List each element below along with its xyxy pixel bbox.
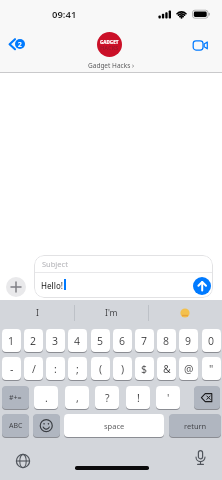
button[interactable]: & [157,357,176,380]
button[interactable]: 3 [46,329,65,352]
staticText: 9 [185,334,192,348]
button[interactable]: I [0,302,74,323]
button[interactable] [33,414,60,437]
button[interactable]: $ [135,357,154,380]
button[interactable]: 9 [179,329,198,352]
button[interactable]: 2 [24,329,43,352]
button[interactable]: ; [68,357,87,380]
staticText: ' [167,391,170,405]
button[interactable]: space [64,414,164,437]
staticText: " [209,362,214,376]
button[interactable]: 5 [91,329,110,352]
staticText: Gadget Hacks › [88,61,134,70]
staticText: 0 [208,334,215,348]
button[interactable]: ' [156,386,180,409]
staticText: ? [105,391,110,405]
staticText: HACKS [100,44,119,52]
button[interactable] [193,277,211,295]
button[interactable]: " [202,357,221,380]
staticText: 09:41 [52,8,77,21]
button[interactable]: GADGET [97,32,122,57]
button[interactable]: ? [95,386,119,409]
staticText: : [54,362,57,376]
button[interactable]: 4 [68,329,87,352]
button[interactable]: I'm [74,302,148,323]
button[interactable] [14,452,31,469]
staticText: , [76,391,79,405]
button[interactable]: 7 [135,329,154,352]
staticText: I [36,307,39,319]
button[interactable]: 6 [113,329,132,352]
staticText: space [104,421,125,431]
staticText: Hello! [41,280,63,291]
staticText: . [45,391,48,405]
button[interactable]: / [24,357,43,380]
staticText: $ [141,362,148,376]
button[interactable]: return [169,414,221,437]
staticText: 2 [18,40,22,49]
staticText: GADGET [100,39,119,45]
button[interactable]: . [34,386,58,409]
button[interactable]: #+= [2,386,29,409]
button[interactable]: ) [113,357,132,380]
staticText: ABC [9,421,23,431]
staticText: ( [99,362,103,376]
staticText: 5 [97,334,104,348]
button[interactable]: 8 [157,329,176,352]
staticText: 8 [163,334,170,348]
staticText: I'm [105,307,118,319]
staticText: & [163,362,171,376]
button[interactable] [148,302,222,323]
button[interactable]: , [65,386,89,409]
staticText: ) [121,362,125,376]
button[interactable]: ( [91,357,110,380]
button[interactable]: 1 [2,329,21,352]
staticText: 2 [30,334,37,348]
button[interactable]: Gadget Hacks › [88,61,134,70]
button[interactable]: : [46,357,65,380]
button[interactable] [194,386,220,409]
button[interactable]: ABC [2,414,29,437]
staticText: #+= [9,393,22,403]
staticText: - [10,362,14,376]
button[interactable]: - [2,357,21,380]
button[interactable]: ! [126,386,150,409]
staticText: / [32,362,36,376]
staticText: 4 [74,334,81,348]
button[interactable]: 2 [6,36,36,54]
button[interactable]: @ [179,357,198,380]
button[interactable] [190,38,212,53]
staticText: return [184,421,207,431]
staticText: ; [76,362,79,376]
button[interactable] [6,277,26,297]
staticText: 3 [52,334,59,348]
button[interactable]: 0 [202,329,221,352]
staticText: @ [184,362,194,376]
staticText: 6 [119,334,126,348]
staticText: ! [137,391,140,405]
staticText: Subject [42,259,68,269]
staticText: 1 [8,334,15,348]
button[interactable] [194,450,207,466]
staticText: 7 [141,334,148,348]
